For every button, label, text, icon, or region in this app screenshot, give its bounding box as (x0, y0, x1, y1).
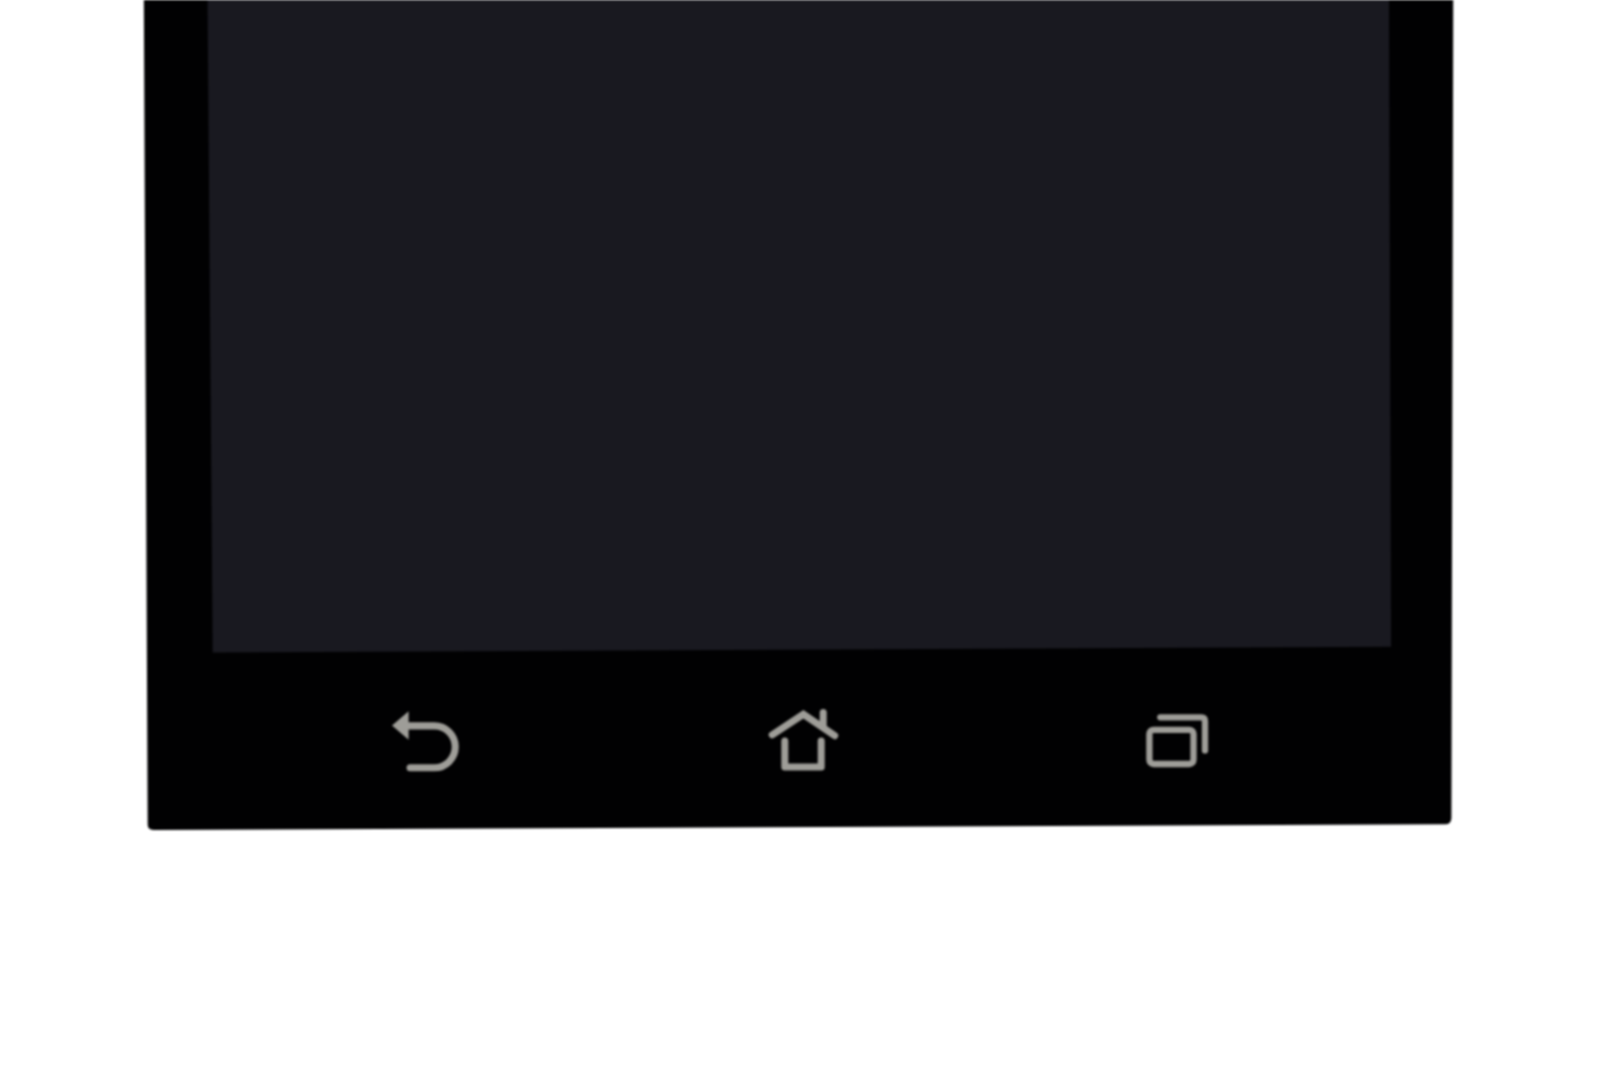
button[interactable]: Recent apps (1090, 665, 1270, 825)
button[interactable]: Back (340, 665, 520, 825)
button[interactable]: Home (715, 665, 895, 825)
